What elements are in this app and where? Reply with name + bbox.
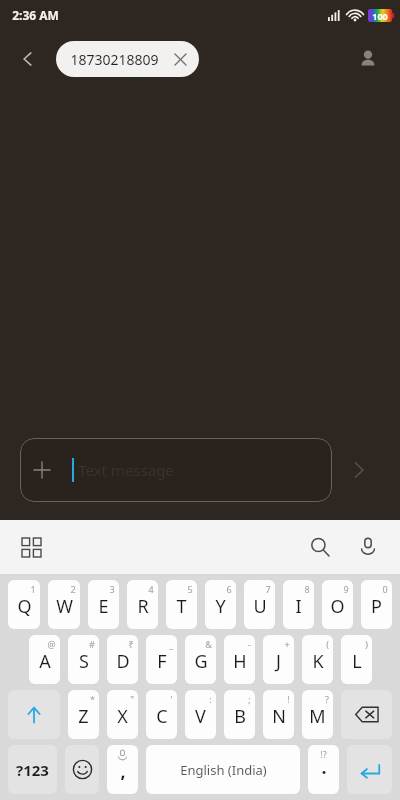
button[interactable]: 0	[361, 580, 392, 629]
staticText: 2:36 AM	[12, 7, 59, 23]
staticText: 0	[382, 583, 388, 595]
button[interactable]: !?	[308, 745, 339, 794]
staticText: ₹	[128, 638, 134, 650]
button[interactable]: )	[341, 635, 372, 684]
button[interactable]: Search	[302, 529, 338, 565]
staticText: 3	[109, 583, 115, 595]
staticText: '	[170, 693, 173, 705]
staticText: W	[56, 594, 73, 619]
button[interactable]: ?	[302, 690, 333, 739]
button[interactable]: (	[302, 635, 333, 684]
staticText: L	[352, 649, 362, 674]
button[interactable]: 5	[166, 580, 197, 629]
staticText: &	[205, 638, 212, 650]
button[interactable]: 9	[322, 580, 353, 629]
staticText: X	[117, 704, 128, 729]
staticText: B	[234, 704, 246, 729]
button[interactable]: Text message	[20, 438, 332, 502]
button[interactable]: 1	[8, 580, 40, 629]
staticText: F	[157, 649, 167, 674]
staticText: *	[90, 693, 95, 705]
button[interactable]: Contacts	[348, 39, 388, 79]
button[interactable]: #	[68, 635, 99, 684]
button[interactable]: Remove recipient	[169, 48, 191, 70]
button[interactable]: -	[224, 635, 255, 684]
staticText: :	[209, 693, 212, 705]
staticText: K	[312, 649, 324, 674]
staticText: O	[330, 594, 345, 619]
button[interactable]: 6	[205, 580, 236, 629]
staticText: !	[287, 693, 290, 705]
staticText: English (India)	[180, 761, 267, 779]
staticText: ?123	[16, 760, 49, 780]
button[interactable]: Voice input	[350, 529, 386, 565]
button[interactable]: ;	[224, 690, 255, 739]
staticText: ?	[325, 693, 329, 705]
button[interactable]: 7	[244, 580, 275, 629]
button[interactable]: Enter	[347, 745, 392, 794]
button[interactable]: Send	[332, 443, 386, 497]
staticText: E	[98, 594, 109, 619]
button[interactable]: Emoji	[65, 745, 99, 794]
staticText: 18730218809	[70, 50, 159, 69]
staticText: .	[321, 755, 327, 780]
staticText: M	[309, 704, 326, 729]
button[interactable]: 2	[48, 580, 80, 629]
staticText: A	[39, 649, 51, 674]
button[interactable]: _	[146, 635, 177, 684]
staticText: P	[371, 594, 382, 619]
staticText: ,	[120, 759, 126, 784]
staticText: S	[79, 649, 89, 674]
staticText: D	[116, 649, 130, 674]
button[interactable]: ?123	[8, 745, 57, 794]
button[interactable]: !	[263, 690, 294, 739]
staticText: @	[47, 638, 56, 650]
staticText: 9	[343, 583, 349, 595]
staticText: (	[326, 638, 329, 650]
staticText: 4	[148, 583, 154, 595]
button[interactable]: 18730218809	[56, 41, 199, 77]
staticText: ;	[248, 693, 251, 705]
staticText: _	[169, 638, 173, 650]
staticText: -	[248, 638, 251, 650]
button[interactable]: 4	[127, 580, 158, 629]
staticText: J	[276, 649, 281, 674]
button[interactable]: 8	[283, 580, 314, 629]
staticText: 2	[70, 583, 76, 595]
button[interactable]: '	[146, 690, 177, 739]
staticText: Z	[78, 704, 89, 729]
staticText: "	[130, 693, 134, 705]
staticText: Y	[215, 594, 226, 619]
button[interactable]: English (India)	[146, 745, 300, 794]
button[interactable]: +	[263, 635, 294, 684]
staticText: 5	[187, 583, 193, 595]
staticText: U	[253, 594, 267, 619]
button[interactable]: :	[185, 690, 216, 739]
button[interactable]: ₹	[107, 635, 138, 684]
button[interactable]: &	[185, 635, 216, 684]
button[interactable]: 3	[88, 580, 119, 629]
staticText: Q	[17, 594, 32, 619]
staticText: 8	[304, 583, 310, 595]
staticText: !?	[320, 748, 327, 760]
staticText: Text message	[78, 460, 174, 480]
staticText: #	[89, 638, 95, 650]
staticText: N	[272, 704, 286, 729]
button[interactable]: "	[107, 690, 138, 739]
staticText: T	[176, 594, 187, 619]
staticText: +	[284, 638, 290, 650]
button[interactable]: @	[29, 635, 60, 684]
staticText: 7	[265, 583, 271, 595]
button[interactable]: *	[68, 690, 99, 739]
staticText: 100	[372, 10, 388, 22]
button[interactable]: Backspace	[341, 690, 392, 739]
staticText: )	[365, 638, 368, 650]
staticText: H	[233, 649, 247, 674]
button[interactable]: Keyboard options	[14, 530, 48, 564]
button[interactable]: Shift	[8, 690, 60, 739]
staticText: V	[195, 704, 206, 729]
button[interactable]: ,	[107, 745, 138, 794]
button[interactable]: Back	[8, 39, 48, 79]
staticText: R	[137, 594, 149, 619]
staticText: I	[295, 594, 302, 619]
